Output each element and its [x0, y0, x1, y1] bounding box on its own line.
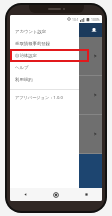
button[interactable]: 利用規約 — [10, 74, 79, 86]
staticText: アプリバージョン：1.0.0 — [15, 95, 63, 101]
button[interactable]: Home — [40, 188, 71, 201]
staticText: 受取情報事前登録 — [15, 41, 51, 47]
staticText: 自治体設定 — [15, 53, 37, 59]
button[interactable]: 受取情報事前登録 — [10, 38, 79, 50]
staticText: 100% — [91, 17, 100, 22]
staticText: ヘルプ — [15, 65, 29, 71]
button[interactable]: Back — [10, 188, 40, 201]
other: Notifications — [91, 27, 97, 33]
button[interactable] — [10, 115, 102, 153]
staticText: 利用規約 — [15, 77, 33, 83]
button[interactable]: 天気・気象 — [10, 154, 102, 188]
button[interactable] — [10, 37, 102, 75]
button[interactable]: ヘルプ — [10, 62, 79, 74]
button[interactable]: Recents — [71, 188, 102, 201]
button[interactable]: アカウント設定 — [10, 26, 79, 38]
button[interactable]: 自治体設定 — [10, 50, 79, 62]
staticText: 10:1 — [72, 17, 79, 22]
button[interactable] — [10, 76, 102, 114]
staticText: アカウント設定 — [15, 29, 47, 35]
